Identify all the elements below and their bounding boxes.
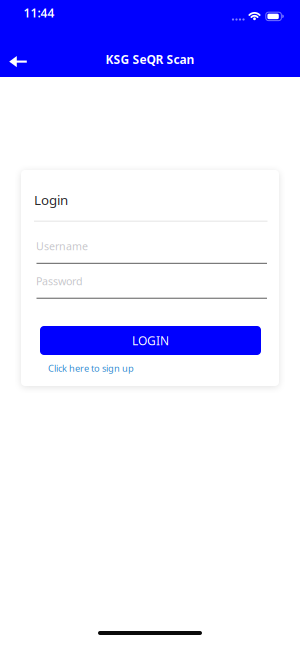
staticText: Login bbox=[34, 191, 68, 209]
staticText: KSG SeQR Scan bbox=[105, 51, 194, 67]
button[interactable]: Back bbox=[0, 47, 36, 77]
button[interactable]: Click here to sign up bbox=[48, 362, 134, 374]
button[interactable]: Username bbox=[36, 239, 268, 265]
staticText: Click here to sign up bbox=[48, 362, 134, 374]
button[interactable]: LOGIN bbox=[40, 326, 261, 355]
staticText: LOGIN bbox=[132, 332, 169, 348]
button[interactable]: Password bbox=[36, 274, 268, 300]
staticText: Username bbox=[36, 239, 88, 253]
staticText: Password bbox=[36, 274, 83, 288]
staticText: 11:44 bbox=[23, 5, 54, 21]
